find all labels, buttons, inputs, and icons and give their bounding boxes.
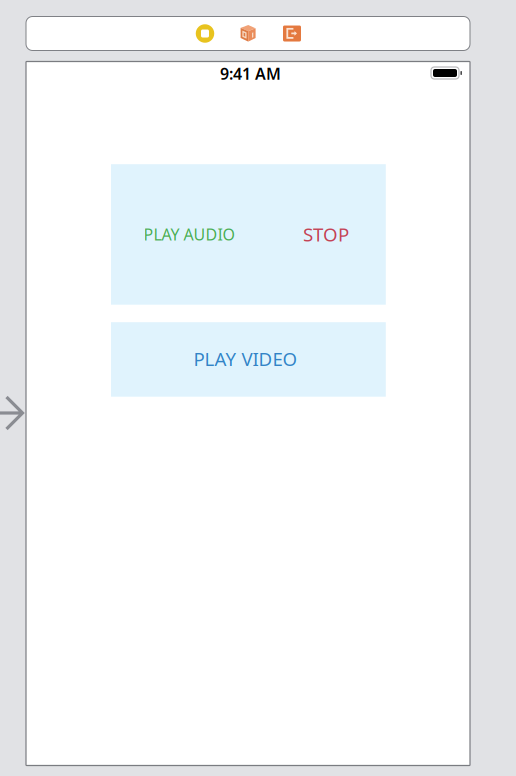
staticText: PLAY AUDIO <box>143 224 234 245</box>
button[interactable]: STOP <box>291 211 361 257</box>
staticText: STOP <box>303 222 349 247</box>
staticText: PLAY VIDEO <box>193 346 297 371</box>
button[interactable]: Debug view hierarchy <box>240 25 256 42</box>
button[interactable]: Share preview <box>283 25 301 41</box>
button[interactable]: PLAY AUDIO <box>133 211 245 257</box>
staticText: 9:41 AM <box>220 63 281 84</box>
button[interactable]: Stop preview <box>194 22 216 44</box>
button[interactable]: PLAY VIDEO <box>179 336 311 382</box>
